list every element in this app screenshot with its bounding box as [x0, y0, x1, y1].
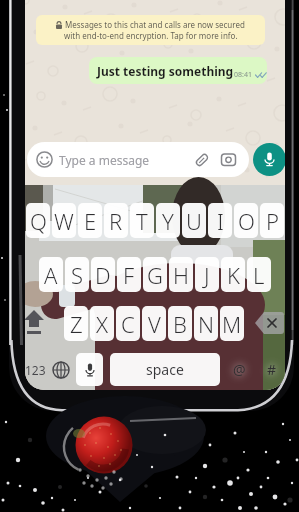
staticText: H: [173, 260, 189, 290]
staticText: J: [204, 260, 210, 290]
staticText: I: [217, 206, 224, 236]
button[interactable]: C: [116, 306, 140, 341]
staticText: W: [54, 206, 74, 236]
staticText: Type a message: [59, 152, 150, 168]
button[interactable]: L: [247, 257, 271, 292]
button[interactable]: D: [91, 257, 115, 292]
button[interactable]: Q: [26, 203, 50, 238]
button[interactable]: K: [221, 257, 245, 292]
staticText: B: [173, 309, 187, 339]
staticText: N: [198, 309, 215, 339]
staticText: Q: [30, 206, 47, 236]
staticText: Y: [162, 206, 174, 236]
button[interactable]: X: [90, 306, 114, 341]
button[interactable]: G: [143, 257, 167, 292]
staticText: @: [233, 360, 246, 379]
button[interactable]: A: [39, 257, 63, 292]
staticText: Z: [70, 309, 83, 339]
staticText: #: [267, 360, 277, 379]
staticText: S: [71, 260, 84, 290]
staticText: O: [238, 206, 255, 236]
button[interactable]: B: [168, 306, 192, 341]
button[interactable]: P: [260, 203, 284, 238]
button[interactable]: E: [78, 203, 102, 238]
staticText: P: [266, 206, 279, 236]
staticText: T: [136, 206, 148, 236]
button[interactable]: Type a message: [27, 142, 249, 177]
button[interactable]: I: [208, 203, 232, 238]
button[interactable]: O: [234, 203, 258, 238]
staticText: G: [147, 260, 163, 290]
staticText: L: [253, 260, 265, 290]
button[interactable]: [253, 143, 285, 176]
button[interactable]: [76, 353, 103, 386]
staticText: space: [146, 360, 184, 379]
button[interactable]: F: [117, 257, 141, 292]
button[interactable]: [25, 310, 46, 338]
staticText: Messages to this chat and calls are now …: [65, 19, 245, 30]
button[interactable]: N: [194, 306, 218, 341]
button[interactable]: M: [220, 306, 244, 341]
staticText: F: [123, 260, 135, 290]
button[interactable]: 123: [25, 353, 48, 386]
staticText: V: [148, 309, 161, 339]
button[interactable]: J: [195, 257, 219, 292]
button[interactable]: Just testing something: [89, 57, 267, 84]
staticText: M: [222, 309, 242, 339]
staticText: R: [109, 206, 123, 236]
button[interactable]: U: [182, 203, 206, 238]
button[interactable]: space: [110, 353, 220, 386]
staticText: A: [44, 260, 58, 290]
button[interactable]: @: [228, 353, 250, 386]
staticText: Just testing something: [97, 63, 234, 79]
staticText: 123: [25, 362, 46, 378]
staticText: E: [84, 206, 97, 236]
staticText: K: [227, 260, 240, 290]
button[interactable]: R: [104, 203, 128, 238]
button[interactable]: T: [130, 203, 154, 238]
staticText: with end-to-end encryption. Tap for more…: [64, 30, 238, 41]
button[interactable]: W: [52, 203, 76, 238]
button[interactable]: [255, 312, 285, 334]
button[interactable]: H: [169, 257, 193, 292]
staticText: U: [186, 206, 202, 236]
button[interactable]: [51, 353, 71, 386]
button[interactable]: Z: [64, 306, 88, 341]
staticText: C: [121, 309, 135, 339]
staticText: X: [96, 309, 109, 339]
button[interactable]: S: [65, 257, 89, 292]
button[interactable]: Messages to this chat and calls are now …: [36, 15, 265, 45]
button[interactable]: #: [261, 353, 283, 386]
staticText: 08:41: [234, 70, 252, 80]
button[interactable]: Y: [156, 203, 180, 238]
staticText: D: [95, 260, 111, 290]
button[interactable]: V: [142, 306, 166, 341]
